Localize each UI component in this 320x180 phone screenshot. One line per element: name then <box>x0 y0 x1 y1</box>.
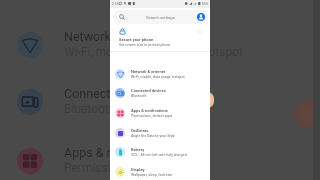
button[interactable]: Display <box>110 162 210 180</box>
button[interactable]: Network & internet <box>110 64 210 84</box>
staticText: 2:35 <box>112 2 119 6</box>
button[interactable]: Secure your phone <box>110 27 210 49</box>
staticText: Connected devices <box>131 88 166 93</box>
staticText: 86% <box>202 2 209 6</box>
button[interactable]: Connected devices <box>110 83 210 103</box>
staticText: Wi-Fi, mobile, data usage, hotspot <box>131 75 185 79</box>
staticText: 92% - 48 min left until fully charged <box>131 153 187 157</box>
staticText: Apps & notifications <box>131 108 168 113</box>
staticText: Permissions, default apps <box>131 114 173 118</box>
staticText: Angle the Data to your Style <box>131 134 175 138</box>
staticText: Permissions, default apps <box>64 161 203 175</box>
staticText: Network & internet <box>131 69 166 74</box>
button[interactable]: Search settings <box>113 10 208 24</box>
staticText: Display <box>131 167 145 172</box>
button[interactable]: Battery <box>110 142 210 162</box>
staticText: Search settings <box>146 15 175 20</box>
staticText: Battery <box>131 147 145 152</box>
staticText: Secure your phone <box>119 37 154 42</box>
button[interactable]: Apps & notifications <box>110 103 210 123</box>
staticText: Bluetooth <box>64 102 116 116</box>
staticText: Wallpaper, sleep, font size <box>131 173 173 177</box>
button[interactable]: Dismiss <box>198 30 202 34</box>
button[interactable]: OxiExtras <box>110 123 210 143</box>
staticText: Bluetooth <box>131 94 147 98</box>
staticText: Connected devices <box>64 86 170 101</box>
staticText: Apps & notifications <box>64 145 176 160</box>
button[interactable]: Account <box>197 13 205 21</box>
staticText: Set screen lock to protect phone <box>119 43 171 47</box>
staticText: OxiExtras <box>131 128 149 133</box>
staticText: Wi-Fi, mobile, data usage, hotspot <box>64 45 243 59</box>
staticText: Network & internet <box>64 29 168 44</box>
